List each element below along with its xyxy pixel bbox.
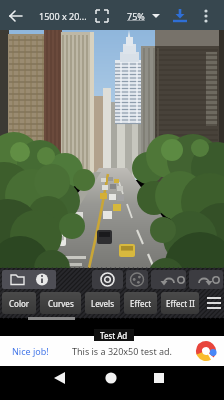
staticText: This is a 320x50 test ad. [72, 345, 172, 357]
button[interactable]: Curves [40, 292, 81, 314]
button[interactable]: Nice job! [0, 336, 224, 366]
button[interactable]: Effect II [161, 292, 199, 314]
staticText: Curves [48, 298, 74, 309]
staticText: Test Ad [100, 330, 128, 341]
staticText: 75% [127, 10, 145, 22]
button[interactable] [46, 366, 74, 392]
staticText: Effect II [166, 298, 195, 309]
button[interactable] [196, 4, 218, 28]
button[interactable] [97, 366, 125, 392]
staticText: Color [9, 298, 30, 309]
button[interactable]: Levels [85, 292, 120, 314]
button[interactable] [145, 366, 173, 392]
button[interactable] [204, 292, 224, 314]
button[interactable] [2, 270, 56, 289]
button[interactable]: Effect [124, 292, 157, 314]
button[interactable] [92, 6, 112, 26]
staticText: Effect [130, 298, 152, 309]
button[interactable] [4, 4, 28, 28]
button[interactable] [92, 270, 123, 289]
staticText: Nice job! [12, 345, 49, 357]
staticText: Levels [91, 298, 115, 309]
staticText: 1500 x 20... [39, 10, 87, 22]
button[interactable] [189, 270, 223, 289]
button[interactable] [168, 4, 192, 28]
button[interactable] [151, 270, 186, 289]
button[interactable]: 75% [124, 4, 166, 26]
button[interactable]: Color [2, 292, 36, 314]
button[interactable] [126, 270, 148, 289]
